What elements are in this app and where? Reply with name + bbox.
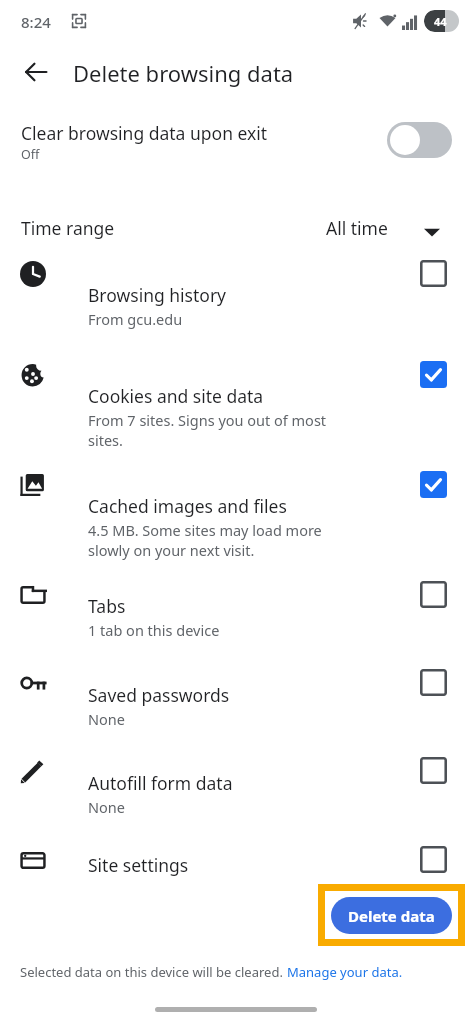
- staticText: Clear browsing data upon exit: [21, 121, 268, 145]
- staticText: 1 tab on this device: [88, 620, 220, 640]
- staticText: All time: [326, 216, 388, 240]
- button[interactable]: [0, 753, 472, 837]
- staticText: 44: [434, 14, 447, 29]
- button[interactable]: [0, 577, 472, 661]
- button[interactable]: Time range: [0, 200, 472, 256]
- staticText: 4.5 MB. Some sites may load more slowly …: [88, 520, 322, 561]
- button[interactable]: Manage your data.: [287, 963, 403, 981]
- button[interactable]: [0, 842, 472, 926]
- staticText: Time range: [21, 216, 115, 240]
- staticText: Cookies and site data: [88, 384, 264, 408]
- staticText: Browsing history: [88, 283, 227, 307]
- staticText: Cached images and files: [88, 494, 287, 518]
- staticText: Delete browsing data: [73, 58, 294, 88]
- staticText: Saved passwords: [88, 683, 230, 707]
- staticText: Off: [21, 146, 40, 163]
- staticText: Selected data on this device will be cle…: [20, 963, 287, 981]
- staticText: 8:24: [21, 12, 51, 32]
- staticText: Autofill form data: [88, 771, 233, 795]
- button[interactable]: Clear browsing data upon exit: [0, 112, 472, 174]
- button[interactable]: [0, 256, 472, 340]
- staticText: Tabs: [88, 594, 126, 618]
- staticText: From gcu.edu: [88, 309, 183, 329]
- staticText: None: [88, 709, 125, 729]
- staticText: Delete data: [348, 906, 435, 926]
- staticText: From 7 sites. Signs you out of most site…: [88, 410, 327, 451]
- staticText: None: [88, 797, 125, 817]
- button[interactable]: [0, 357, 472, 461]
- button[interactable]: Delete data: [331, 897, 452, 934]
- button[interactable]: Back: [12, 48, 60, 96]
- button[interactable]: [0, 467, 472, 571]
- staticText: Site settings: [88, 853, 189, 877]
- button[interactable]: [0, 665, 472, 749]
